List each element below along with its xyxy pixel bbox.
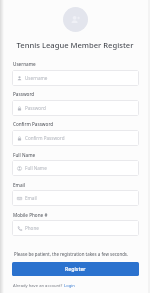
staticText: Register	[65, 265, 86, 272]
staticText: Full Name	[13, 152, 36, 158]
staticText: Please be patient, the registration take…	[14, 251, 129, 257]
staticText: Username	[13, 61, 36, 67]
staticText: Email	[25, 195, 37, 201]
button[interactable]: Add profile photo	[63, 7, 88, 32]
button[interactable]: Full Name	[12, 160, 139, 176]
staticText: Confirm Password	[13, 121, 54, 127]
staticText: Already have an account?	[13, 283, 64, 289]
staticText: Tennis League Member Register	[0, 40, 150, 50]
staticText: Phone	[25, 225, 39, 231]
staticText: Password	[25, 105, 46, 111]
staticText: Full Name	[25, 165, 47, 171]
staticText: Confirm Password	[25, 135, 65, 141]
staticText: Mobile Phone #	[13, 212, 48, 218]
button[interactable]: Confirm Password	[12, 130, 139, 146]
button[interactable]: Password	[12, 100, 139, 116]
staticText: Password	[13, 91, 35, 97]
button[interactable]: Register	[12, 262, 139, 276]
button[interactable]: Login	[64, 283, 75, 289]
staticText: Username	[25, 75, 48, 81]
button[interactable]: Email	[12, 190, 139, 206]
button[interactable]: Phone	[12, 220, 139, 236]
staticText: Email	[13, 182, 26, 188]
button[interactable]: Username	[12, 70, 139, 86]
